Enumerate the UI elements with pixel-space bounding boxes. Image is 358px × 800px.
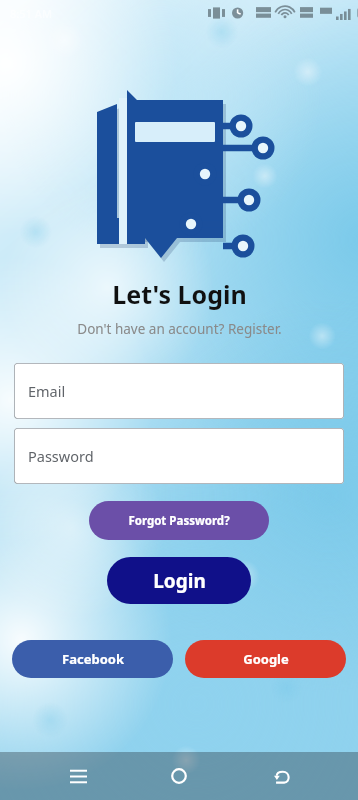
button[interactable]: Login (107, 557, 251, 604)
staticText: Email (28, 381, 66, 401)
staticText: Google (243, 650, 289, 668)
button[interactable]: Don't have an account? Register. (77, 320, 282, 338)
staticText: Password (28, 446, 94, 466)
button[interactable]: Back (257, 752, 305, 800)
button[interactable]: Recent apps (54, 752, 102, 800)
button[interactable]: Home (155, 752, 203, 800)
staticText: Let's Login (112, 277, 247, 311)
staticText: Facebook (62, 650, 124, 668)
button[interactable]: Facebook (12, 640, 173, 678)
staticText: Login (153, 568, 206, 594)
button[interactable]: Password (14, 428, 344, 484)
button[interactable]: Forgot Password? (89, 501, 269, 540)
staticText: Forgot Password? (128, 513, 230, 529)
button[interactable]: Email (14, 363, 344, 419)
button[interactable]: Google (185, 640, 346, 678)
